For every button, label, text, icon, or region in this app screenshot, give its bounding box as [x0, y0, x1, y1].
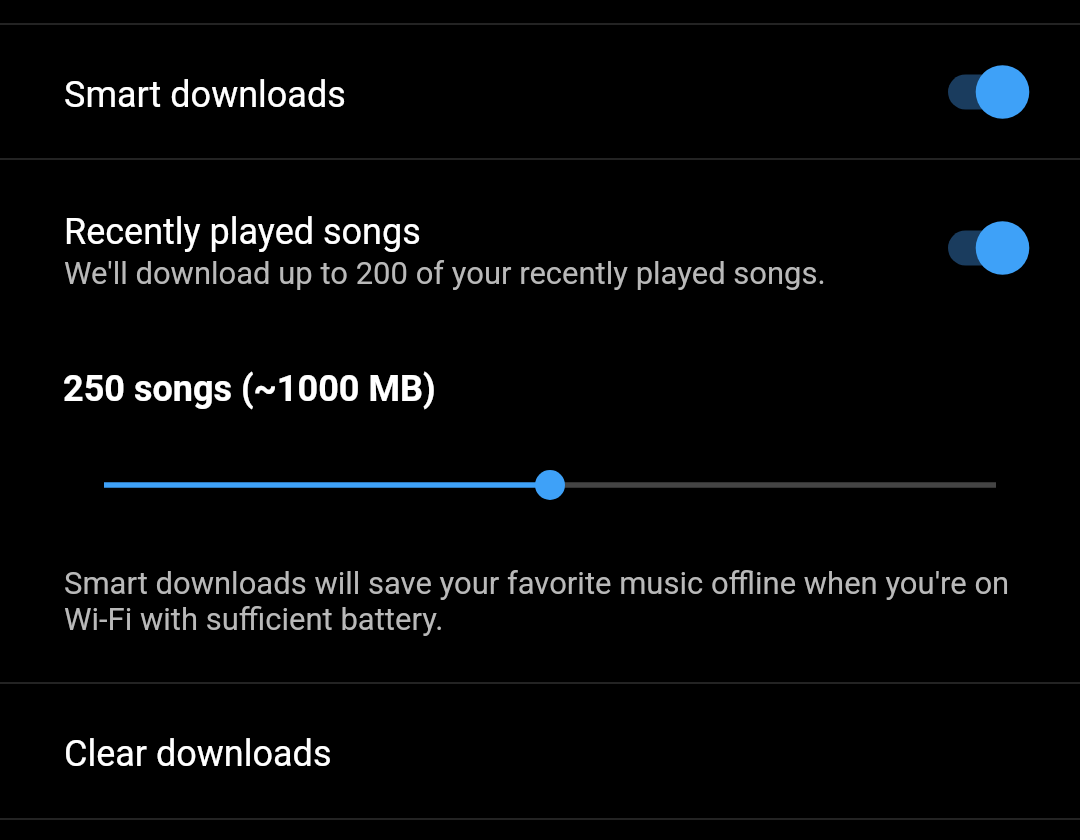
staticText: 250 songs (~1000 MB) [63, 367, 436, 409]
button[interactable]: Recently played songs toggle [948, 218, 1035, 278]
button[interactable]: Clear downloads [0, 684, 1080, 818]
staticText: Smart downloads will save your favorite … [64, 565, 1024, 637]
button[interactable]: Recently played songs [0, 160, 1080, 310]
staticText: Clear downloads [64, 732, 332, 774]
staticText: Smart downloads [64, 73, 346, 115]
staticText: Recently played songs [64, 210, 421, 252]
button[interactable]: Smart downloads toggle [948, 62, 1035, 122]
staticText: We'll download up to 200 of your recentl… [64, 255, 826, 292]
button[interactable]: Number of songs to download [0, 453, 1080, 517]
button[interactable]: Smart downloads [0, 25, 1080, 158]
